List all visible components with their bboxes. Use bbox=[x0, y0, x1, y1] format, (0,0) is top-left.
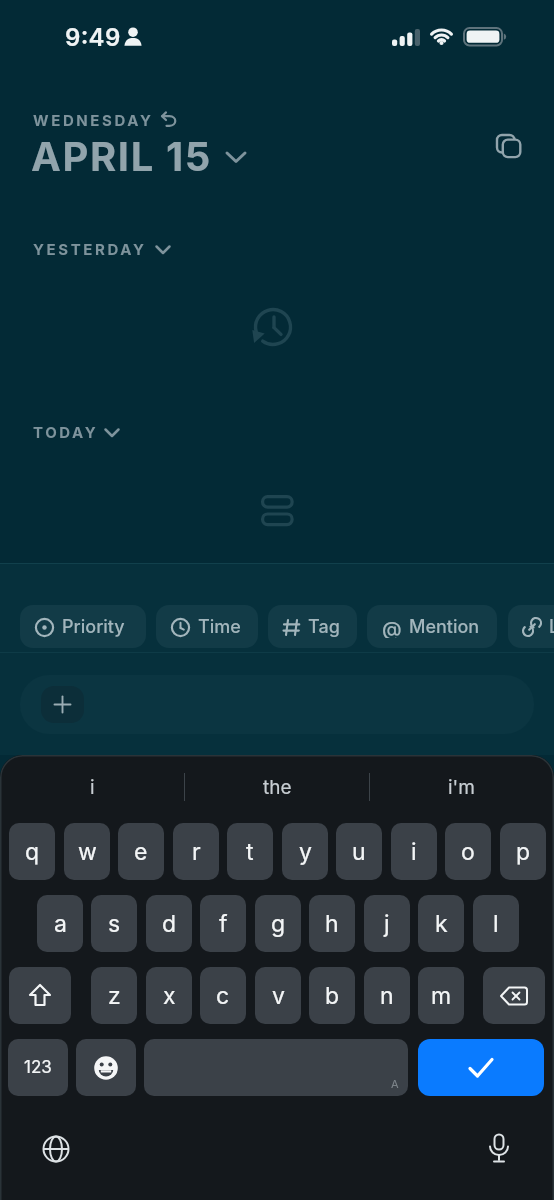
button[interactable]: k bbox=[418, 895, 464, 952]
staticText: YESTERDAY bbox=[33, 240, 147, 258]
staticText: WEDNESDAY bbox=[33, 111, 154, 129]
button[interactable]: i bbox=[391, 823, 437, 880]
staticText: Mention bbox=[409, 616, 480, 638]
staticText: A bbox=[391, 1077, 399, 1090]
button[interactable] bbox=[41, 686, 84, 723]
button[interactable]: c bbox=[200, 967, 246, 1024]
button[interactable]: v bbox=[255, 967, 301, 1024]
staticText: z bbox=[108, 982, 121, 1010]
button[interactable] bbox=[418, 1039, 544, 1096]
button[interactable]: r bbox=[173, 823, 219, 880]
button[interactable]: @ bbox=[367, 605, 497, 648]
button[interactable]: Link bbox=[508, 605, 554, 648]
button[interactable]: Time bbox=[156, 605, 258, 648]
staticText: o bbox=[461, 838, 475, 866]
button[interactable]: u bbox=[336, 823, 382, 880]
button[interactable]: e bbox=[118, 823, 164, 880]
staticText: TODAY bbox=[33, 423, 99, 441]
button[interactable]: w bbox=[64, 823, 110, 880]
staticText: i'm bbox=[448, 776, 475, 799]
button[interactable]: z bbox=[91, 967, 137, 1024]
button[interactable]: y bbox=[282, 823, 328, 880]
staticText: l bbox=[493, 910, 499, 938]
staticText: j bbox=[384, 910, 390, 938]
button[interactable] bbox=[479, 1127, 519, 1171]
button[interactable]: g bbox=[255, 895, 301, 952]
button[interactable]: h bbox=[309, 895, 355, 952]
staticText: @ bbox=[382, 617, 402, 638]
button[interactable]: i bbox=[32, 769, 152, 805]
staticText: h bbox=[325, 910, 339, 938]
button[interactable]: APRIL 15 bbox=[31, 132, 212, 180]
staticText: APRIL 15 bbox=[31, 132, 212, 180]
button[interactable]: n bbox=[364, 967, 410, 1024]
button[interactable]: i'm bbox=[401, 769, 521, 805]
staticText: t bbox=[246, 838, 254, 866]
staticText: p bbox=[516, 838, 531, 866]
button[interactable]: d bbox=[146, 895, 192, 952]
staticText: Link bbox=[549, 616, 554, 638]
button[interactable]: a bbox=[37, 895, 83, 952]
staticText: v bbox=[272, 982, 285, 1010]
button[interactable]: m bbox=[418, 967, 464, 1024]
button[interactable] bbox=[492, 130, 528, 166]
staticText: x bbox=[163, 982, 176, 1010]
staticText: Time bbox=[198, 616, 241, 638]
button[interactable]: q bbox=[9, 823, 55, 880]
staticText: e bbox=[134, 838, 148, 866]
button[interactable] bbox=[483, 967, 545, 1024]
staticText: i bbox=[90, 776, 95, 799]
button[interactable]: x bbox=[146, 967, 192, 1024]
button[interactable]: j bbox=[364, 895, 410, 952]
staticText: 123 bbox=[24, 1057, 52, 1078]
button[interactable]: A bbox=[144, 1039, 408, 1096]
staticText: u bbox=[352, 838, 366, 866]
button[interactable]: o bbox=[445, 823, 491, 880]
staticText: m bbox=[431, 982, 452, 1010]
staticText: a bbox=[54, 910, 67, 938]
staticText: y bbox=[299, 838, 312, 866]
button[interactable]: Priority bbox=[20, 605, 146, 648]
staticText: the bbox=[263, 776, 292, 799]
button[interactable]: b bbox=[309, 967, 355, 1024]
staticText: f bbox=[219, 910, 228, 938]
staticText: r bbox=[192, 838, 201, 866]
button[interactable] bbox=[9, 967, 71, 1024]
button[interactable]: t bbox=[227, 823, 273, 880]
staticText: w bbox=[78, 838, 97, 866]
button[interactable]: the bbox=[217, 769, 337, 805]
staticText: b bbox=[325, 982, 340, 1010]
staticText: d bbox=[162, 910, 177, 938]
button[interactable]: l bbox=[473, 895, 519, 952]
staticText: c bbox=[216, 982, 230, 1010]
button[interactable] bbox=[76, 1039, 136, 1096]
button[interactable]: 123 bbox=[8, 1039, 68, 1096]
staticText: 9:49 bbox=[65, 23, 121, 52]
staticText: k bbox=[435, 910, 448, 938]
button[interactable] bbox=[20, 675, 534, 734]
button[interactable] bbox=[36, 1129, 76, 1169]
staticText: s bbox=[108, 910, 121, 938]
staticText: q bbox=[25, 838, 40, 866]
staticText: i bbox=[411, 838, 417, 866]
staticText: g bbox=[271, 910, 286, 938]
staticText: Tag bbox=[308, 616, 340, 638]
button[interactable]: p bbox=[500, 823, 546, 880]
button[interactable]: f bbox=[200, 895, 246, 952]
button[interactable]: Tag bbox=[268, 605, 357, 648]
button[interactable]: s bbox=[91, 895, 137, 952]
staticText: n bbox=[380, 982, 394, 1010]
staticText: Priority bbox=[62, 616, 125, 638]
